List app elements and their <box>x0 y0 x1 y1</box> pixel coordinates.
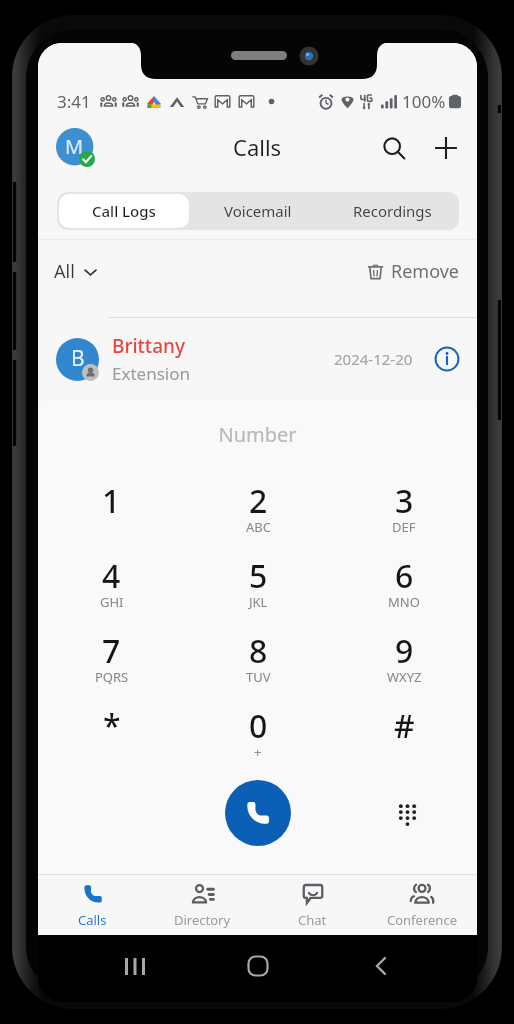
staticText: All <box>54 259 75 284</box>
staticText: Conference <box>387 911 457 929</box>
staticText: Calls <box>78 911 107 929</box>
staticText: Calls <box>233 132 282 162</box>
button[interactable]: 3 <box>331 479 477 554</box>
staticText: Recordings <box>353 201 432 221</box>
staticText: 3:41 <box>57 90 91 113</box>
button[interactable]: 1 <box>38 479 185 554</box>
staticText: # <box>394 704 415 748</box>
staticText: 8 <box>249 629 268 673</box>
staticText: Chat <box>298 911 327 929</box>
button[interactable]: 7 <box>38 629 185 704</box>
staticText: M <box>65 133 84 160</box>
staticText: Voicemail <box>224 201 292 221</box>
staticText: B <box>71 344 85 373</box>
staticText: 2024-12-20 <box>334 349 413 369</box>
button[interactable]: B <box>38 318 477 400</box>
staticText: DEF <box>392 518 416 536</box>
button[interactable]: 2 <box>185 479 331 554</box>
staticText: PQRS <box>95 668 129 686</box>
staticText: Brittany <box>112 333 185 359</box>
staticText: 7 <box>102 629 121 673</box>
button[interactable]: Keypad <box>387 793 427 833</box>
button[interactable]: # <box>331 704 477 779</box>
staticText: Extension <box>112 362 190 385</box>
button[interactable]: Conference <box>367 875 477 935</box>
staticText: Directory <box>174 911 231 929</box>
staticText: 0 <box>249 704 268 748</box>
staticText: 3 <box>395 479 414 523</box>
button[interactable]: 6 <box>331 554 477 629</box>
button[interactable]: 0 <box>185 704 331 779</box>
staticText: MNO <box>388 593 420 611</box>
button[interactable]: Directory <box>147 875 257 935</box>
button[interactable]: Call <box>225 780 291 846</box>
staticText: 6 <box>395 554 414 598</box>
button[interactable]: * <box>38 704 185 779</box>
button[interactable]: Remove <box>366 259 460 284</box>
button[interactable]: All <box>54 259 99 284</box>
button[interactable]: Call Logs <box>59 194 189 228</box>
button[interactable]: Search <box>371 125 417 171</box>
staticText: GHI <box>100 593 124 611</box>
staticText: ABC <box>246 518 271 536</box>
staticText: Number <box>38 421 477 448</box>
staticText: Remove <box>391 259 460 284</box>
button[interactable]: 8 <box>185 629 331 704</box>
staticText: TUV <box>246 668 271 686</box>
button[interactable]: Account <box>56 128 95 167</box>
staticText: 4 <box>102 554 121 598</box>
staticText: 1 <box>102 479 121 523</box>
staticText: + <box>254 743 262 761</box>
staticText: * <box>103 704 121 748</box>
button[interactable]: 4 <box>38 554 185 629</box>
staticText: 2 <box>249 479 268 523</box>
staticText: JKL <box>249 593 268 611</box>
button[interactable]: Chat <box>257 875 367 935</box>
button[interactable]: Home <box>231 939 285 993</box>
button[interactable]: Recents <box>107 939 161 993</box>
button[interactable]: Add <box>423 125 469 171</box>
button[interactable]: Back <box>354 939 408 993</box>
button[interactable]: Calls <box>38 875 147 935</box>
staticText: 5 <box>249 554 268 598</box>
button[interactable]: 5 <box>185 554 331 629</box>
button[interactable]: Call details <box>432 344 462 374</box>
button[interactable]: Recordings <box>327 194 457 228</box>
staticText: 9 <box>395 629 414 673</box>
staticText: Call Logs <box>92 201 156 221</box>
staticText: 100% <box>402 90 446 113</box>
staticText: WXYZ <box>387 668 422 686</box>
button[interactable]: 9 <box>331 629 477 704</box>
button[interactable]: Voicemail <box>193 194 323 228</box>
